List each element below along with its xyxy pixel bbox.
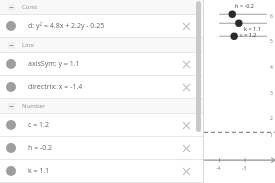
button[interactable]: Conic <box>0 0 203 14</box>
staticText: h = -0.2 <box>235 2 255 9</box>
button[interactable]: Toggle visibility <box>6 59 16 69</box>
staticText: Conic <box>22 3 38 11</box>
button[interactable]: Delete <box>178 56 194 72</box>
button[interactable]: Toggle visibility <box>6 120 16 130</box>
staticText: h = -0.2 <box>28 143 53 153</box>
staticText: axisSym: y = 1.1 <box>28 59 80 69</box>
staticText: -4 <box>216 165 221 172</box>
staticText: k = 1.1 <box>244 25 261 32</box>
staticText: 4 <box>270 64 273 71</box>
button[interactable]: Delete <box>178 140 194 156</box>
staticText: c = 1.2 <box>28 120 49 130</box>
staticText: Line <box>22 41 34 49</box>
button[interactable]: Toggle visibility <box>0 15 203 37</box>
button[interactable]: Delete <box>178 18 194 34</box>
staticText: -3 <box>242 165 247 172</box>
button[interactable]: Toggle visibility <box>6 21 16 31</box>
staticText: Number <box>22 102 46 110</box>
staticText: directrix: x = -1.4 <box>28 82 83 92</box>
button[interactable]: Toggle visibility <box>0 76 203 98</box>
staticText: 1 <box>270 132 273 139</box>
button[interactable]: Line <box>0 38 203 52</box>
staticText: 3 <box>270 90 273 97</box>
button[interactable]: Toggle visibility <box>0 114 203 136</box>
staticText: 6 <box>270 13 273 20</box>
button[interactable]: Delete <box>178 163 194 179</box>
button[interactable]: Toggle visibility <box>0 160 203 182</box>
staticText: 2 <box>270 115 273 122</box>
button[interactable]: Toggle visibility <box>6 82 16 92</box>
staticText: k = 1.1 <box>28 166 50 176</box>
button[interactable]: Toggle visibility <box>6 143 16 153</box>
button[interactable]: Toggle visibility <box>6 166 16 176</box>
staticText: c = 1.2 <box>240 31 257 38</box>
button[interactable]: Toggle visibility <box>0 137 203 159</box>
button[interactable]: Delete <box>178 117 194 133</box>
button[interactable]: Toggle visibility <box>0 53 203 75</box>
button[interactable]: Number <box>0 99 203 113</box>
button[interactable]: Delete <box>178 79 194 95</box>
staticText: d: y2 = 4.8x + 2.2y - 0.25 <box>28 21 105 31</box>
staticText: 5 <box>270 38 273 45</box>
